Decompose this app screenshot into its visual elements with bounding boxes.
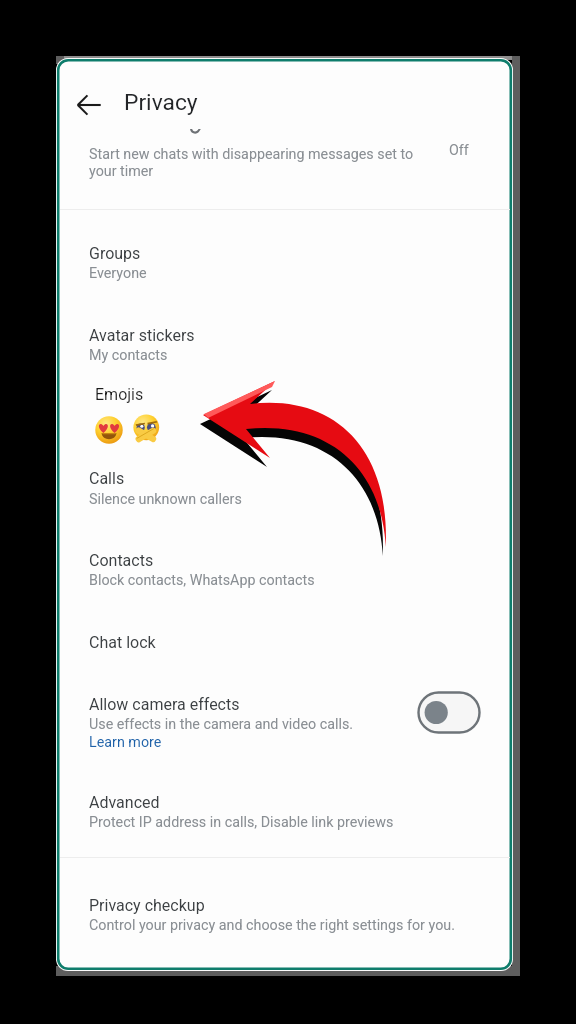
button[interactable]: Learn more: [84, 730, 170, 755]
button[interactable]: [59, 880, 510, 946]
staticText: Use effects in the camera and video call…: [89, 716, 354, 733]
staticText: Groups: [89, 244, 141, 263]
button[interactable]: [0, 0, 576, 210]
staticText: My contacts: [89, 347, 168, 364]
button[interactable]: [59, 375, 510, 453]
staticText: Advanced: [89, 793, 160, 812]
staticText: Block contacts, WhatsApp contacts: [89, 572, 315, 589]
staticText: Contacts: [89, 551, 154, 570]
staticText: Everyone: [89, 265, 147, 282]
staticText: Privacy: [124, 89, 198, 116]
button[interactable]: Allow camera effects toggle: [417, 691, 481, 734]
staticText: Allow camera effects: [89, 695, 240, 714]
staticText: Start new chats with disappearing messag…: [89, 146, 414, 163]
button[interactable]: [59, 225, 510, 295]
button[interactable]: [59, 536, 510, 602]
staticText: Protect IP address in calls, Disable lin…: [89, 814, 394, 831]
button[interactable]: Back: [72, 88, 106, 122]
staticText: Chat lock: [89, 633, 156, 652]
button[interactable]: Privacy: [116, 85, 206, 120]
staticText: Emojis: [95, 385, 144, 404]
staticText: your timer: [89, 163, 154, 180]
button[interactable]: [59, 307, 510, 372]
staticText: Calls: [89, 469, 125, 488]
staticText: Privacy checkup: [89, 896, 205, 915]
staticText: Silence unknown callers: [89, 491, 242, 508]
button[interactable]: [59, 455, 510, 521]
staticText: Avatar stickers: [89, 326, 195, 345]
staticText: Learn more: [89, 734, 162, 751]
staticText: Control your privacy and choose the righ…: [89, 917, 455, 934]
button[interactable]: [59, 680, 510, 760]
button[interactable]: [59, 618, 510, 666]
staticText: Off: [449, 142, 469, 159]
button[interactable]: [59, 778, 510, 844]
